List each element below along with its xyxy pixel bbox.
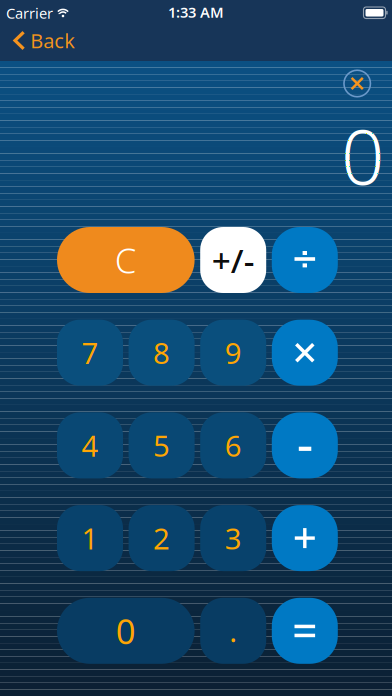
button[interactable]: Back — [13, 23, 93, 57]
staticText: 5 — [153, 426, 170, 465]
button[interactable]: 6 — [200, 412, 266, 478]
staticText: . — [229, 611, 237, 650]
button[interactable]: +/- — [200, 227, 266, 293]
staticText: 4 — [81, 426, 98, 465]
button[interactable]: 9 — [200, 320, 266, 386]
staticText: Back — [30, 27, 75, 54]
button[interactable]: Close — [341, 67, 373, 99]
button[interactable]: 3 — [200, 505, 266, 571]
button[interactable]: Plus — [272, 505, 338, 571]
staticText: 1:33 AM — [168, 2, 224, 22]
button[interactable]: 1 — [57, 505, 123, 571]
button[interactable]: Multiply — [272, 320, 338, 386]
staticText: 0 — [341, 104, 384, 205]
staticText: 3 — [225, 519, 242, 558]
staticText: 6 — [225, 426, 242, 465]
button[interactable]: 2 — [129, 505, 195, 571]
button[interactable]: 4 — [57, 412, 123, 478]
button[interactable]: C — [57, 227, 195, 293]
button[interactable]: 5 — [129, 412, 195, 478]
staticText: Carrier — [6, 3, 53, 23]
staticText: 7 — [81, 333, 98, 372]
button[interactable]: . — [200, 598, 266, 664]
button[interactable]: Equals — [272, 598, 338, 664]
button[interactable]: Minus — [272, 412, 338, 478]
staticText: 0 — [116, 608, 136, 654]
button[interactable]: Divide — [272, 227, 338, 293]
button[interactable]: 7 — [57, 320, 123, 386]
staticText: 2 — [153, 519, 170, 558]
staticText: C — [115, 237, 137, 283]
staticText: 8 — [153, 333, 170, 372]
button[interactable]: 0 — [57, 598, 195, 664]
button[interactable]: 8 — [129, 320, 195, 386]
staticText: +/- — [212, 238, 255, 282]
staticText: 1 — [81, 519, 98, 558]
staticText: 9 — [225, 333, 242, 372]
